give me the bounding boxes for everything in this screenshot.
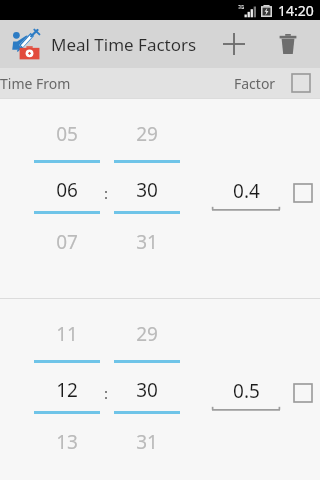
staticText: : — [104, 183, 109, 203]
button[interactable]: 11 — [34, 299, 100, 480]
staticText: 0.4 — [233, 178, 260, 204]
staticText: 12 — [56, 377, 78, 403]
staticText: Meal Time Factors — [51, 33, 197, 56]
staticText: 11 — [56, 321, 78, 347]
staticText: 07 — [56, 229, 78, 255]
button[interactable]: Select row — [294, 379, 320, 407]
staticText: 06 — [56, 177, 78, 203]
button[interactable]: Delete — [264, 20, 312, 68]
staticText: : — [104, 383, 109, 403]
button[interactable]: Select all — [286, 68, 316, 98]
staticText: 14:20 — [278, 1, 314, 20]
staticText: 13 — [56, 429, 78, 455]
button[interactable]: 05 — [34, 99, 100, 298]
staticText: 29 — [136, 321, 158, 347]
staticText: 31 — [136, 229, 158, 255]
button[interactable]: 0.4 — [212, 177, 280, 211]
staticText: 0.5 — [233, 378, 260, 404]
staticText: 29 — [136, 121, 158, 147]
staticText: 30 — [136, 177, 158, 203]
staticText: Time From — [0, 74, 71, 93]
staticText: 05 — [56, 121, 78, 147]
button[interactable]: 29 — [114, 299, 180, 480]
staticText: 30 — [136, 377, 158, 403]
button[interactable]: Add — [210, 20, 258, 68]
staticText: Factor — [234, 74, 276, 93]
button[interactable]: 0.5 — [212, 377, 280, 411]
button[interactable]: 29 — [114, 99, 180, 298]
button[interactable]: App icon — [8, 26, 44, 62]
staticText: 31 — [136, 429, 158, 455]
button[interactable]: Select row — [294, 179, 320, 207]
